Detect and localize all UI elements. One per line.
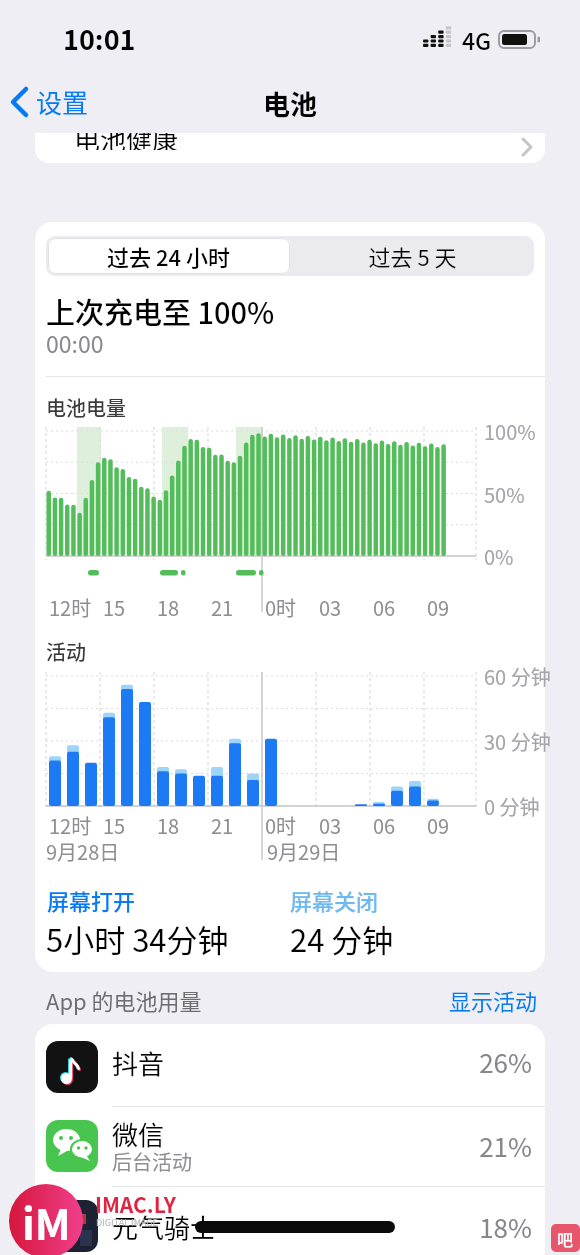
staticText: 抖音 [112,1044,165,1082]
staticText: 24 分钟 [290,916,394,961]
staticText: 09 [427,593,450,622]
staticText: 0 分钟 [484,792,540,821]
button[interactable] [35,1107,545,1187]
button[interactable] [35,1187,545,1255]
staticText: 上次充电至 100% [46,290,275,332]
staticText: 03 [319,811,342,840]
staticText: 0时 [265,811,297,840]
staticText: 电池 [263,84,317,123]
staticText: 60 分钟 [484,662,551,691]
button[interactable]: 设置 [36,82,106,122]
button[interactable] [48,238,290,274]
staticText: 9月28日 [46,837,120,866]
staticText: 15 [103,811,126,840]
staticText: 4G [462,23,492,56]
staticText: 21 [211,811,234,840]
staticText: IMAC.LY [95,1189,176,1219]
staticText: 18% [479,1208,532,1246]
staticText: 0% [484,542,514,571]
staticText: iM [22,1191,71,1252]
staticText: 过去 24 小时 [107,240,230,272]
button[interactable] [290,238,534,274]
button[interactable]: 电池健康 [35,133,545,163]
staticText: 21 [211,593,234,622]
staticText: 03 [319,593,342,622]
staticText: 12时 [49,811,92,840]
staticText: 0时 [265,593,297,622]
staticText: 活动 [46,637,86,666]
staticText: 屏幕打开 [47,884,136,916]
staticText: 06 [373,811,396,840]
staticText: 电池健康 [74,133,179,150]
staticText: 电池电量 [46,393,126,422]
staticText: 屏幕关闭 [290,884,379,916]
staticText: 元气骑士 [112,1208,217,1246]
staticText: 100% [484,417,536,446]
staticText: 过去 5 天 [368,240,457,272]
staticText: 后台活动 [112,1147,192,1176]
staticText: 显示活动 [448,984,537,1016]
staticText: 18 [157,593,180,622]
staticText: 设置 [36,83,89,121]
staticText: 00:00 [46,326,104,359]
staticText: 9月29日 [267,837,341,866]
staticText: 21% [479,1127,532,1165]
staticText: 12时 [49,593,92,622]
button[interactable] [35,1024,545,1106]
staticText: 09 [427,811,450,840]
staticText: 5小时 34分钟 [46,916,229,961]
staticText: 06 [373,593,396,622]
staticText: 吧 [557,1227,574,1250]
staticText: 18 [157,811,180,840]
staticText: 15 [103,593,126,622]
staticText: 26% [479,1043,532,1081]
staticText: 50% [484,480,525,509]
staticText: 30 分钟 [484,727,551,756]
staticText: App 的电池用量 [46,984,202,1016]
staticText: 微信 [112,1115,165,1153]
staticText: 10:01 [63,19,136,58]
staticText: DIGITAL IMAGE [96,1216,158,1228]
button[interactable]: 显示活动 [397,984,537,1016]
